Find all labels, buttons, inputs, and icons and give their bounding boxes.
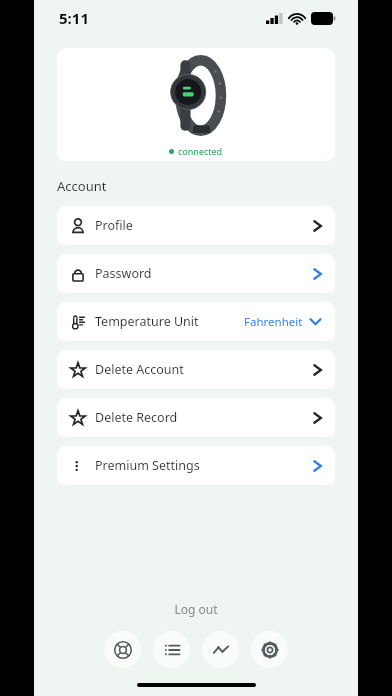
button[interactable]: connected (57, 48, 335, 161)
button[interactable]: Password (57, 254, 335, 293)
button[interactable]: Trends (202, 631, 239, 668)
staticText: Password (95, 265, 152, 282)
staticText: Temperature Unit (95, 313, 199, 330)
staticText: Profile (95, 217, 133, 234)
button[interactable]: Settings (251, 631, 288, 668)
button[interactable]: Delete Record (57, 398, 335, 437)
staticText: Delete Record (95, 409, 178, 426)
staticText: Delete Account (95, 361, 184, 378)
button[interactable]: Support (104, 631, 141, 668)
staticText: Account (57, 177, 107, 195)
staticText: connected (178, 145, 223, 157)
button[interactable]: List (153, 631, 190, 668)
button[interactable]: Log out (34, 597, 358, 621)
button[interactable]: Profile (57, 206, 335, 245)
staticText: Fahrenheit (244, 314, 303, 330)
button[interactable]: Delete Account (57, 350, 335, 389)
staticText: Premium Settings (95, 457, 200, 474)
staticText: 5:11 (59, 8, 89, 28)
button[interactable]: Premium Settings (57, 446, 335, 485)
button[interactable]: Temperature Unit (57, 302, 335, 341)
